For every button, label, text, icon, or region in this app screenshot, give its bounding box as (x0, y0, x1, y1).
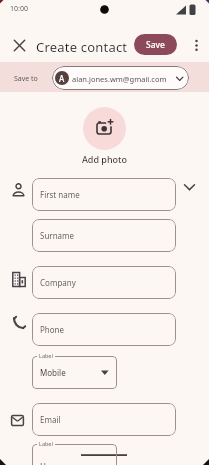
staticText: Surname (40, 230, 75, 241)
button[interactable]: Phone (32, 313, 176, 346)
staticText: Phone (40, 324, 65, 335)
staticText: First name (40, 189, 80, 200)
staticText: A (59, 73, 65, 84)
staticText: Label (39, 440, 53, 447)
staticText: Home (40, 461, 63, 465)
button[interactable]: Mobile (32, 356, 117, 389)
staticText: Save (146, 39, 165, 51)
staticText: alan.jones.wm@gmail.com (72, 74, 167, 84)
button[interactable]: Save (134, 34, 177, 55)
button[interactable] (83, 107, 126, 150)
staticText: Email (40, 414, 61, 425)
button[interactable]: Surname (32, 219, 176, 252)
button[interactable]: Email (32, 403, 176, 436)
button[interactable]: Home (32, 444, 117, 465)
staticText: Create contact (36, 38, 128, 56)
staticText: Save to (14, 74, 38, 84)
button[interactable]: First name (32, 178, 176, 211)
staticText: Company (40, 277, 76, 288)
staticText: Mobile (40, 367, 66, 378)
staticText: Add photo (0, 153, 209, 165)
staticText: Label (39, 352, 53, 359)
button[interactable]: A (52, 66, 189, 90)
button[interactable] (8, 34, 31, 57)
staticText: 10:00 (10, 4, 28, 14)
button[interactable]: Company (32, 266, 176, 299)
button[interactable] (188, 36, 206, 55)
